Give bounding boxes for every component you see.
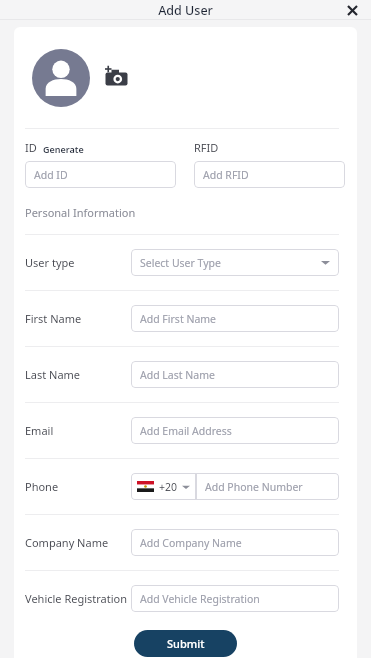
button[interactable]: User type: [14, 235, 357, 290]
staticText: First Name: [25, 311, 82, 326]
button[interactable]: Add photo: [104, 65, 129, 90]
button[interactable]: Add Vehicle Registration: [131, 585, 339, 612]
staticText: Add Email Address: [140, 424, 330, 438]
button[interactable]: First Name: [14, 291, 357, 346]
staticText: RFID: [194, 140, 219, 155]
button[interactable]: Add ID: [25, 161, 176, 188]
button[interactable]: Phone: [14, 459, 357, 514]
button[interactable]: Submit: [134, 630, 237, 657]
staticText: User type: [25, 255, 75, 270]
button[interactable]: Last Name: [14, 347, 357, 402]
button[interactable]: Add Last Name: [131, 361, 339, 388]
staticText: Email: [25, 423, 54, 438]
button[interactable]: Add Email Address: [131, 417, 339, 444]
button[interactable]: Select User Type: [131, 249, 339, 276]
staticText: Add Company Name: [140, 536, 330, 550]
button[interactable]: Add RFID: [194, 161, 345, 188]
staticText: Vehicle Registration: [25, 591, 128, 606]
staticText: Add Phone Number: [205, 480, 303, 494]
button[interactable]: Close: [343, 1, 361, 19]
button[interactable]: Vehicle Registration: [14, 571, 357, 626]
staticText: Phone: [25, 479, 59, 494]
staticText: Add ID: [34, 168, 167, 182]
button[interactable]: Profile photo: [32, 49, 90, 107]
staticText: Add First Name: [140, 312, 330, 326]
button[interactable]: Email: [14, 403, 357, 458]
staticText: +20: [159, 480, 178, 494]
button[interactable]: Add Company Name: [131, 529, 339, 556]
staticText: Last Name: [25, 367, 81, 382]
staticText: Select User Type: [140, 256, 321, 270]
staticText: Generate: [43, 143, 84, 155]
staticText: Company Name: [25, 535, 109, 550]
staticText: Add RFID: [203, 168, 336, 182]
button[interactable]: Company Name: [14, 515, 357, 570]
button[interactable]: Add First Name: [131, 305, 339, 332]
staticText: Add Last Name: [140, 368, 330, 382]
button[interactable]: Add Phone Number: [196, 473, 339, 500]
staticText: Add Vehicle Registration: [140, 592, 330, 606]
button[interactable]: Country code: [131, 473, 196, 500]
staticText: Add User: [158, 2, 213, 19]
staticText: Submit: [167, 636, 205, 651]
staticText: ID: [25, 140, 37, 155]
button[interactable]: Generate: [43, 143, 84, 155]
staticText: Personal Information: [25, 205, 136, 220]
